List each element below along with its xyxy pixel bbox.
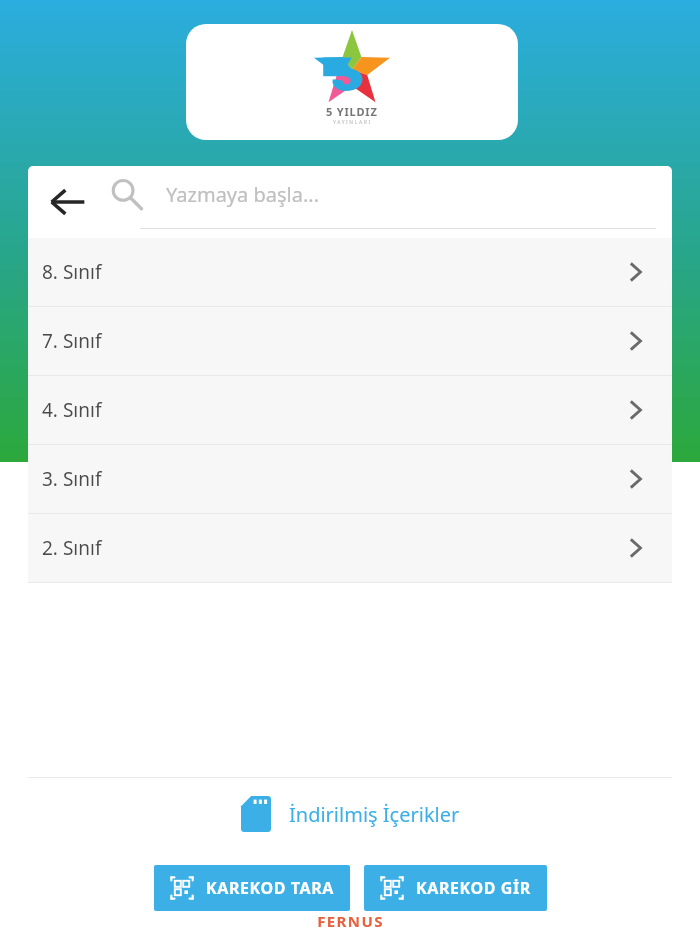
staticText: 5 YILDIZ (326, 104, 378, 119)
button[interactable]: KAREKOD GİR (364, 865, 547, 911)
staticText: 2. Sınıf (42, 535, 102, 561)
staticText: YAYINLARI (333, 119, 372, 126)
staticText: KAREKOD TARA (206, 877, 334, 899)
button[interactable]: İndirilmiş İçerikler (28, 778, 672, 850)
button[interactable]: 2. Sınıf (28, 514, 672, 582)
staticText: FERNUS (317, 911, 384, 931)
button[interactable]: Back (28, 166, 108, 238)
staticText: KAREKOD GİR (416, 877, 531, 899)
button[interactable]: 5 Yıldız Yayınları (186, 24, 518, 140)
staticText: 8. Sınıf (42, 259, 102, 285)
staticText: 7. Sınıf (42, 328, 102, 354)
staticText: Yazmaya başla... (166, 181, 320, 208)
button[interactable]: 3. Sınıf (28, 445, 672, 513)
staticText: İndirilmiş İçerikler (289, 801, 460, 828)
button[interactable]: 7. Sınıf (28, 307, 672, 375)
staticText: 3. Sınıf (42, 466, 102, 492)
button[interactable]: 8. Sınıf (28, 238, 672, 306)
button[interactable]: 4. Sınıf (28, 376, 672, 444)
button[interactable]: KAREKOD TARA (154, 865, 350, 911)
staticText: 4. Sınıf (42, 397, 102, 423)
